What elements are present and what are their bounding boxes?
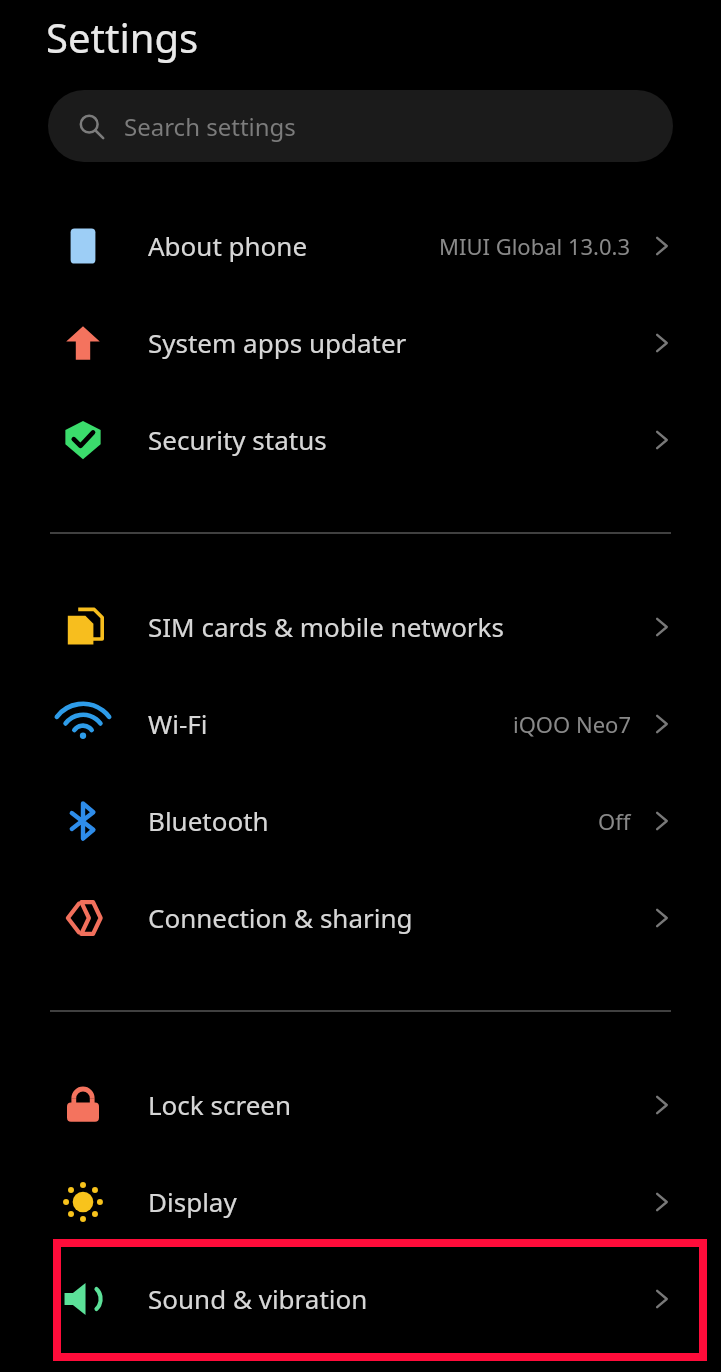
button[interactable]: Security status — [0, 391, 721, 488]
staticText: Display — [148, 1184, 237, 1219]
staticText: About phone — [148, 228, 308, 263]
button[interactable]: Sound & vibration — [0, 1250, 721, 1347]
button[interactable]: System apps updater — [0, 294, 721, 391]
staticText: Sound & vibration — [148, 1281, 368, 1316]
staticText: SIM cards & mobile networks — [148, 609, 504, 644]
staticText: Off — [598, 806, 631, 836]
button[interactable]: Wi-Fi — [0, 675, 721, 772]
button[interactable]: Display — [0, 1153, 721, 1250]
staticText: Lock screen — [148, 1087, 292, 1122]
button[interactable]: Search settings — [48, 90, 673, 162]
button[interactable]: About phone — [0, 197, 721, 294]
staticText: Connection & sharing — [148, 900, 413, 935]
staticText: System apps updater — [148, 325, 407, 360]
button[interactable]: Connection & sharing — [0, 869, 721, 966]
button[interactable]: SIM cards & mobile networks — [0, 578, 721, 675]
staticText: Wi-Fi — [148, 706, 208, 741]
staticText: Settings — [46, 10, 199, 64]
staticText: iQOO Neo7 — [513, 709, 631, 739]
button[interactable]: Lock screen — [0, 1056, 721, 1153]
staticText: MIUI Global 13.0.3 — [439, 231, 631, 261]
button[interactable]: Bluetooth — [0, 772, 721, 869]
staticText: Bluetooth — [148, 803, 269, 838]
staticText: Search settings — [124, 110, 296, 143]
staticText: Security status — [148, 422, 327, 457]
